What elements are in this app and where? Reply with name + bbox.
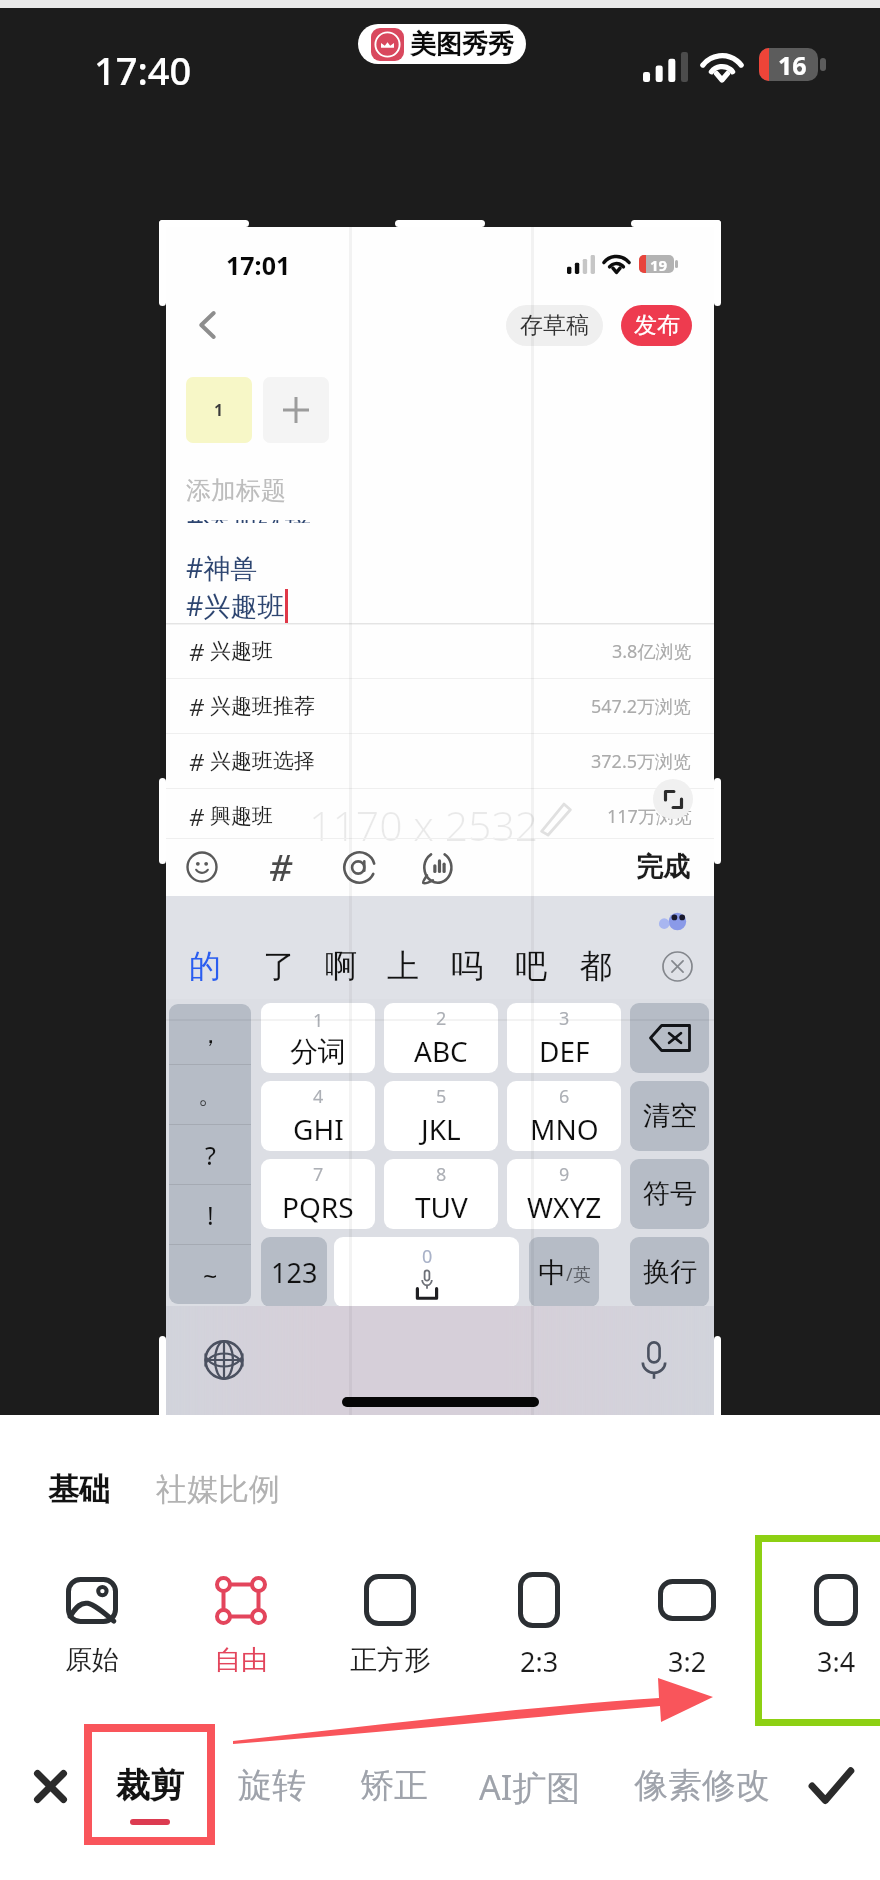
button[interactable] [630,1003,709,1073]
staticText: 自由 [214,1643,268,1677]
staticText: 372.5万浏览 [591,749,692,774]
button[interactable]: 4 [261,1081,375,1151]
staticText: #添加链接 [186,520,312,523]
staticText: # [189,691,204,722]
button[interactable]: 完成 [636,850,690,884]
staticText: 17:40 [94,44,192,96]
button[interactable]: Clear input [658,947,696,985]
staticText: 的 [189,946,221,986]
button[interactable]: 1 [261,1003,375,1073]
staticText: PQRS [282,1188,354,1226]
button[interactable]: 上 [381,944,425,988]
staticText: 完成 [636,850,690,884]
button[interactable]: 像素修改 [612,1748,792,1832]
button[interactable]: 3:4 [764,1568,880,1696]
staticText: # [189,801,204,832]
button[interactable]: 8 [384,1159,498,1229]
button[interactable]: 存草稿 [506,305,603,346]
button[interactable]: # [166,624,714,678]
button[interactable]: 9 [507,1159,621,1229]
button[interactable]: 啊 [319,944,363,988]
button[interactable]: Emoji [176,841,228,893]
button[interactable]: 的 [183,944,227,988]
button[interactable]: 中 [529,1237,599,1307]
staticText: DEF [539,1032,590,1070]
button[interactable]: 2:3 [467,1568,611,1696]
staticText: 美图秀秀 [410,28,514,61]
button[interactable]: 发布 [621,305,692,346]
button[interactable]: 5 [384,1081,498,1151]
button[interactable]: 3:2 [615,1568,759,1696]
staticText: #神兽 [186,549,258,586]
staticText: 547.2万浏览 [591,694,692,719]
staticText: 存草稿 [520,311,589,340]
button[interactable]: Confirm [797,1752,865,1820]
button[interactable]: 吗 [445,944,489,988]
staticText: 9 [559,1162,570,1187]
button[interactable]: 都 [574,944,618,988]
button[interactable]: Mention [333,841,385,893]
staticText: 都 [580,946,612,986]
button[interactable]: 正方形 [318,1568,462,1696]
staticText: 2 [436,1006,447,1031]
staticText: 中 [538,1255,566,1290]
staticText: 了 [263,946,295,986]
button[interactable]: 3 [507,1003,621,1073]
staticText: 1170 x 2532 [309,797,539,853]
button[interactable]: Voice input [626,1332,682,1388]
staticText: 兴趣班推荐 [210,693,315,719]
button[interactable]: # [166,734,714,788]
button[interactable]: 换行 [630,1237,709,1307]
button[interactable]: 原始 [20,1568,164,1696]
staticText: 符号 [643,1177,697,1211]
staticText: 3.8亿浏览 [612,639,692,664]
staticText: 。 [198,1079,223,1110]
staticText: 换行 [643,1255,697,1289]
staticText: 4 [313,1084,324,1109]
button[interactable]: 2 [384,1003,498,1073]
button[interactable]: Cancel [16,1752,84,1820]
button[interactable]: 符号 [630,1159,709,1229]
staticText: 正方形 [350,1643,431,1677]
button[interactable]: 吧 [509,944,553,988]
button[interactable]: # [166,789,714,843]
button[interactable]: ! [169,1185,251,1244]
staticText: ! [207,1198,214,1232]
button[interactable]: Poll [411,841,463,893]
staticText: 清空 [643,1099,697,1133]
staticText: ABC [414,1032,468,1070]
button[interactable]: 了 [257,944,301,988]
button[interactable]: AI扩图 [440,1748,620,1832]
button[interactable]: 6 [507,1081,621,1151]
button[interactable]: ， [169,1004,251,1064]
staticText: ~ [203,1258,218,1292]
button[interactable]: 基础 [48,1470,110,1509]
button[interactable]: 0 [334,1237,519,1307]
button[interactable]: 7 [261,1159,375,1229]
staticText: 0 [422,1244,433,1269]
button[interactable]: 自由 [169,1568,313,1696]
button[interactable]: 裁剪 [60,1748,240,1832]
button[interactable]: ~ [169,1245,251,1304]
staticText: 19 [650,255,668,273]
button[interactable]: 123 [261,1237,327,1307]
button[interactable]: 旋转 [182,1748,362,1832]
staticText: MNO [530,1110,599,1148]
button[interactable]: Resize [653,779,693,819]
button[interactable]: 清空 [630,1081,709,1151]
button[interactable]: ? [169,1125,251,1184]
button[interactable]: 社媒比例 [156,1470,280,1509]
staticText: 6 [559,1084,570,1109]
staticText: GHI [293,1110,344,1148]
button[interactable]: Language [196,1332,252,1388]
button[interactable]: Topic [255,841,307,893]
button[interactable]: Back [182,299,234,351]
staticText: 1 [313,1008,324,1033]
button[interactable]: # [166,679,714,733]
staticText: 123 [271,1254,318,1291]
staticText: 兴趣班 [210,638,273,664]
button[interactable]: 矫正 [304,1748,484,1832]
staticText: 裁剪 [116,1764,184,1807]
button[interactable]: 。 [169,1065,251,1124]
button[interactable]: 美图秀秀 [358,24,526,64]
